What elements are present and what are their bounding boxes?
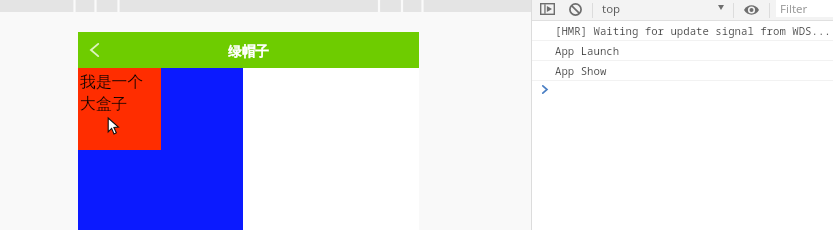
staticText: top [602, 1, 621, 17]
button[interactable]: top [600, 0, 726, 21]
button[interactable]: 蓝色盒子 [78, 68, 243, 230]
staticText: App Launch [555, 44, 620, 59]
staticText: 我是一个大盒子 [80, 72, 146, 114]
staticText: App Show [555, 64, 607, 79]
button[interactable]: Filter [776, 0, 833, 17]
button[interactable]: Clear console [566, 0, 585, 21]
button[interactable]: App Show [532, 61, 833, 81]
button[interactable]: 我是一个大盒子 [78, 68, 161, 150]
button[interactable]: App Launch [532, 41, 833, 61]
button[interactable]: Live expressions [741, 0, 761, 21]
button[interactable]: [HMR] Waiting for update signal from WDS… [532, 21, 833, 41]
staticText: [HMR] Waiting for update signal from WDS… [555, 24, 831, 39]
staticText: 绿帽子 [78, 43, 419, 60]
button[interactable]: Back [78, 32, 118, 68]
staticText: Filter [780, 1, 808, 17]
button[interactable]: Toggle console sidebar [538, 0, 557, 21]
button[interactable]: Console prompt [532, 81, 833, 230]
